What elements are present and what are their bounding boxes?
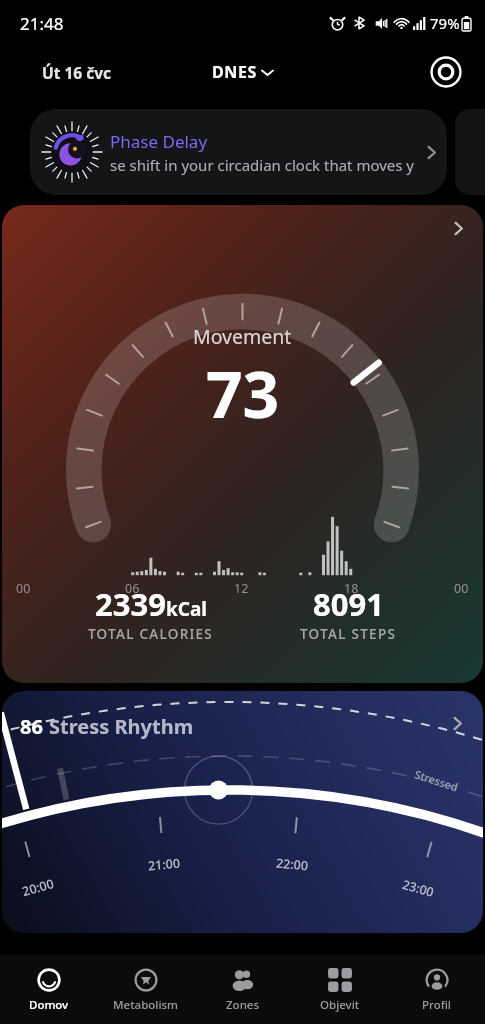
staticText: Metabolism: [113, 997, 178, 1013]
staticText: se shift in your circadian clock that mo…: [110, 155, 415, 175]
staticText: Objevit: [320, 997, 360, 1013]
staticText: Stress Rhythm: [49, 713, 194, 740]
button[interactable]: Zones: [194, 955, 291, 1024]
button[interactable]: Movement: [2, 205, 483, 683]
staticText: 2339: [95, 583, 166, 625]
button[interactable]: Open movement details: [443, 213, 473, 243]
button[interactable]: DNES: [206, 57, 279, 87]
staticText: 23:00: [400, 876, 437, 901]
button[interactable]: Domov: [0, 955, 97, 1024]
staticText: 8091: [313, 583, 384, 625]
staticText: kCal: [166, 596, 208, 622]
staticText: 00: [454, 580, 469, 597]
staticText: Profil: [422, 997, 451, 1013]
staticText: Movement: [193, 323, 292, 350]
staticText: 12: [234, 580, 249, 597]
staticText: 18: [344, 580, 359, 597]
button[interactable]: 18:00: [2, 691, 483, 933]
staticText: 06: [125, 580, 140, 597]
staticText: 86: [20, 713, 43, 740]
staticText: Út 16 čvc: [42, 62, 112, 83]
staticText: Zones: [226, 997, 260, 1013]
button[interactable]: Objevit: [291, 955, 388, 1024]
staticText: 79%: [430, 13, 460, 33]
staticText: 21:48: [20, 12, 64, 35]
staticText: 00: [16, 580, 31, 597]
staticText: 22:00: [275, 854, 310, 874]
staticText: Domov: [29, 997, 69, 1013]
staticText: 21:00: [147, 855, 182, 874]
staticText: TOTAL CALORIES: [88, 625, 214, 643]
staticText: DNES: [212, 61, 257, 83]
staticText: TOTAL STEPS: [300, 625, 397, 643]
staticText: Phase Delay: [110, 130, 208, 153]
staticText: 20:00: [20, 875, 57, 900]
button[interactable]: Record: [429, 55, 463, 89]
button[interactable]: Open stress rhythm details: [443, 709, 471, 737]
staticText: 73: [206, 350, 280, 437]
button[interactable]: Metabolism: [97, 955, 194, 1024]
button[interactable]: Profil: [388, 955, 485, 1024]
staticText: Stressed: [413, 766, 460, 795]
button[interactable]: Phase Delay: [30, 109, 447, 195]
